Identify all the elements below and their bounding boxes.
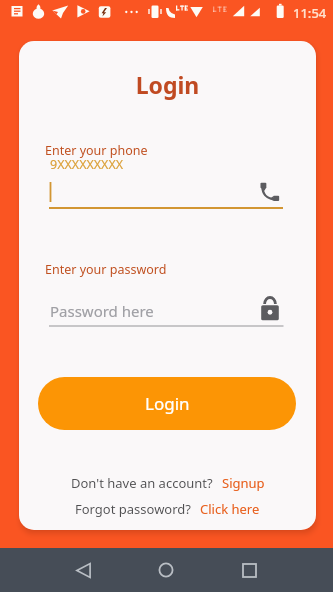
button[interactable]: Enter your phone number bbox=[48, 177, 284, 210]
staticText: Don't have an account? bbox=[71, 474, 213, 492]
staticText: 9XXXXXXXXX bbox=[50, 156, 124, 173]
button[interactable]: Enter your password bbox=[48, 295, 284, 327]
staticText: Forgot passoword? bbox=[75, 500, 191, 518]
staticText: Login bbox=[145, 392, 190, 415]
other: Password bbox=[260, 296, 280, 321]
staticText: Login bbox=[19, 69, 316, 100]
button[interactable]: Signup bbox=[222, 474, 265, 492]
staticText: Password here bbox=[50, 301, 154, 321]
button[interactable]: Recents bbox=[227, 548, 271, 592]
staticText: Enter your password bbox=[45, 261, 167, 278]
staticText: Enter your phone bbox=[45, 142, 148, 159]
button[interactable]: Back bbox=[61, 548, 105, 592]
button[interactable]: Click here bbox=[200, 500, 260, 518]
staticText: 11:54 bbox=[293, 4, 327, 22]
other: Phone bbox=[259, 181, 280, 202]
button[interactable]: Login bbox=[38, 377, 296, 430]
staticText: Click here bbox=[200, 500, 260, 518]
staticText: Signup bbox=[222, 474, 265, 492]
button[interactable]: Home bbox=[144, 548, 188, 592]
